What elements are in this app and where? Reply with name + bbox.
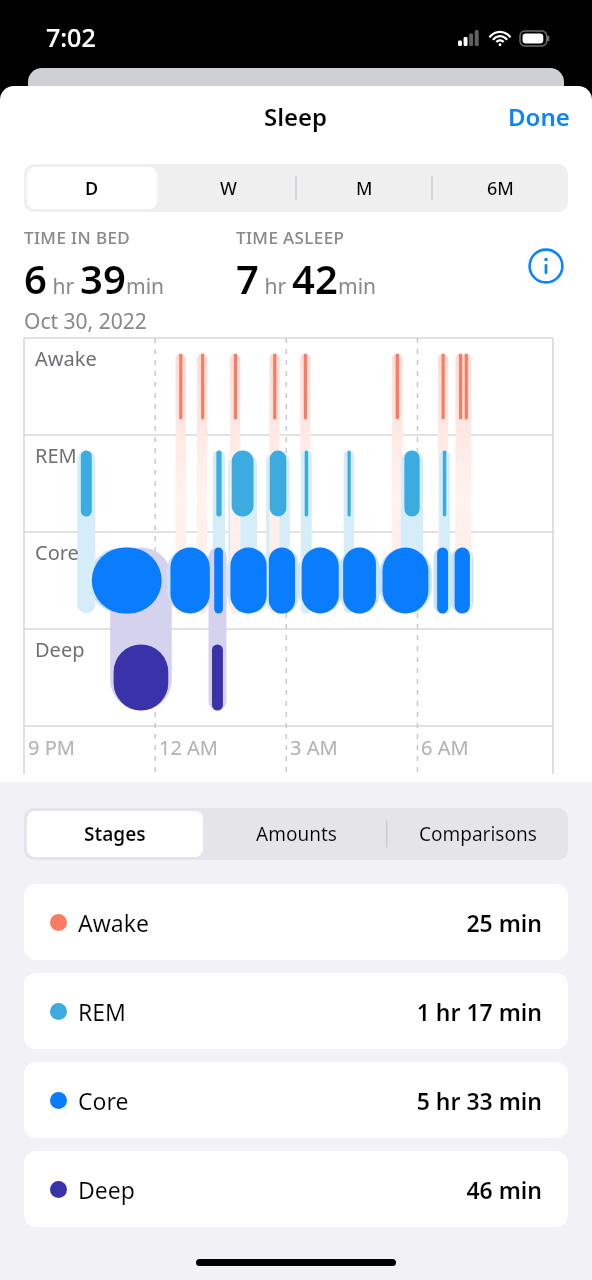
- staticText: 12 AM: [159, 734, 218, 761]
- staticText: 46 min: [466, 1174, 542, 1205]
- staticText: 7:02: [46, 20, 96, 54]
- button[interactable]: Deep: [24, 1151, 568, 1227]
- staticText: TIME ASLEEP: [236, 226, 345, 249]
- staticText: hr: [47, 272, 75, 301]
- staticText: Comparisons: [419, 821, 537, 847]
- staticText: 3 AM: [290, 734, 338, 761]
- staticText: 6M: [487, 176, 514, 201]
- button[interactable]: Information about sleep data: [526, 246, 566, 286]
- button[interactable]: M: [299, 167, 429, 209]
- staticText: Deep: [35, 636, 85, 663]
- staticText: Deep: [78, 1174, 135, 1205]
- staticText: 6: [24, 251, 47, 305]
- button[interactable]: Amounts: [209, 811, 384, 857]
- staticText: 6 AM: [421, 734, 469, 761]
- staticText: min: [338, 272, 377, 301]
- button[interactable]: W: [163, 167, 293, 209]
- staticText: W: [220, 176, 237, 201]
- staticText: Stages: [84, 821, 146, 847]
- staticText: D: [85, 176, 99, 201]
- staticText: 25 min: [466, 907, 542, 938]
- staticText: hr: [259, 272, 287, 301]
- button[interactable]: Done: [486, 92, 592, 141]
- button[interactable]: D: [27, 167, 157, 209]
- staticText: REM: [35, 442, 77, 469]
- button[interactable]: Core: [24, 1062, 568, 1138]
- button[interactable]: Awake: [24, 884, 568, 960]
- staticText: Core: [35, 539, 79, 566]
- staticText: Core: [78, 1085, 129, 1116]
- staticText: Awake: [78, 907, 149, 938]
- staticText: Done: [508, 100, 570, 133]
- staticText: 1 hr 17 min: [416, 996, 542, 1027]
- staticText: Sleep: [264, 100, 328, 133]
- staticText: 39: [80, 251, 126, 305]
- staticText: Oct 30, 2022: [24, 307, 147, 332]
- staticText: TIME IN BED: [24, 226, 131, 249]
- staticText: 42: [292, 251, 338, 305]
- staticText: REM: [78, 996, 126, 1027]
- button[interactable]: REM: [24, 973, 568, 1049]
- staticText: Amounts: [256, 821, 337, 847]
- button[interactable]: Stages: [27, 811, 203, 857]
- staticText: Awake: [35, 345, 97, 372]
- staticText: M: [356, 176, 373, 201]
- staticText: 7: [236, 251, 259, 305]
- staticText: 5 hr 33 min: [416, 1085, 542, 1116]
- button[interactable]: Comparisons: [390, 811, 565, 857]
- staticText: min: [126, 272, 165, 301]
- staticText: 9 PM: [28, 734, 75, 761]
- button[interactable]: 6M: [435, 167, 565, 209]
